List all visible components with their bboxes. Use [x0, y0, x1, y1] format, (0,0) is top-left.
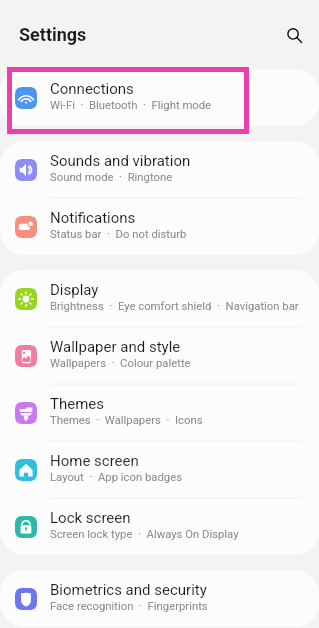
button[interactable]: Lock screen [0, 498, 319, 555]
staticText: Settings [19, 24, 87, 45]
staticText: Lock screen [50, 509, 131, 527]
button[interactable]: Display [0, 270, 319, 327]
staticText: Status bar · Do not disturb [50, 228, 187, 241]
staticText: Biometrics and security [50, 581, 207, 599]
staticText: Home screen [50, 452, 139, 470]
staticText: Layout · App icon badges [50, 471, 182, 484]
button[interactable]: Notifications [0, 198, 319, 255]
staticText: Brightness · Eye comfort shield · Naviga… [50, 300, 299, 313]
staticText: Notifications [50, 209, 136, 227]
staticText: Display [50, 281, 99, 299]
button[interactable]: Home screen [0, 441, 319, 498]
button[interactable]: Search [274, 15, 314, 55]
staticText: Sounds and vibration [50, 152, 191, 170]
staticText: Face recognition · Fingerprints [50, 600, 208, 613]
staticText: Themes · Wallpapers · Icons [50, 414, 203, 427]
button[interactable]: Wallpaper and style [0, 327, 319, 384]
button[interactable]: Sounds and vibration [0, 141, 319, 198]
staticText: Wallpaper and style [50, 338, 181, 356]
button[interactable]: Themes [0, 384, 319, 441]
button[interactable]: Connections [0, 69, 319, 126]
staticText: Connections [50, 80, 134, 98]
staticText: Sound mode · Ringtone [50, 171, 173, 184]
staticText: Screen lock type · Always On Display [50, 528, 239, 541]
staticText: Themes [50, 395, 105, 413]
staticText: Wallpapers · Colour palette [50, 357, 191, 370]
staticText: Wi-Fi · Bluetooth · Flight mode [50, 99, 212, 112]
button[interactable]: Biometrics and security [0, 570, 319, 627]
